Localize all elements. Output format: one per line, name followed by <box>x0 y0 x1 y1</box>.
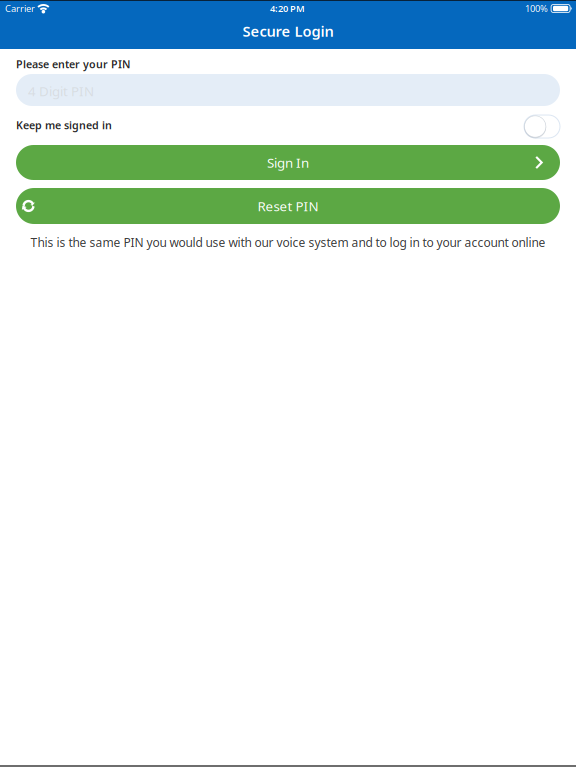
staticText: Sign In <box>267 154 309 171</box>
staticText: Secure Login <box>242 21 333 41</box>
staticText: Reset PIN <box>257 197 318 215</box>
button[interactable]: Reset PIN <box>16 188 560 224</box>
staticText: 4:20 PM <box>270 2 305 15</box>
staticText: This is the same PIN you would use with … <box>30 234 545 250</box>
staticText: 100% <box>525 2 548 15</box>
staticText: Carrier <box>5 2 35 15</box>
staticText: 4 Digit PIN <box>28 82 94 100</box>
staticText: Please enter your PIN <box>16 57 130 71</box>
staticText: Keep me signed in <box>16 118 112 132</box>
button[interactable]: Keep me signed in <box>524 115 560 138</box>
button[interactable]: 4 Digit PIN <box>16 74 560 106</box>
button[interactable]: Sign In <box>16 145 560 180</box>
